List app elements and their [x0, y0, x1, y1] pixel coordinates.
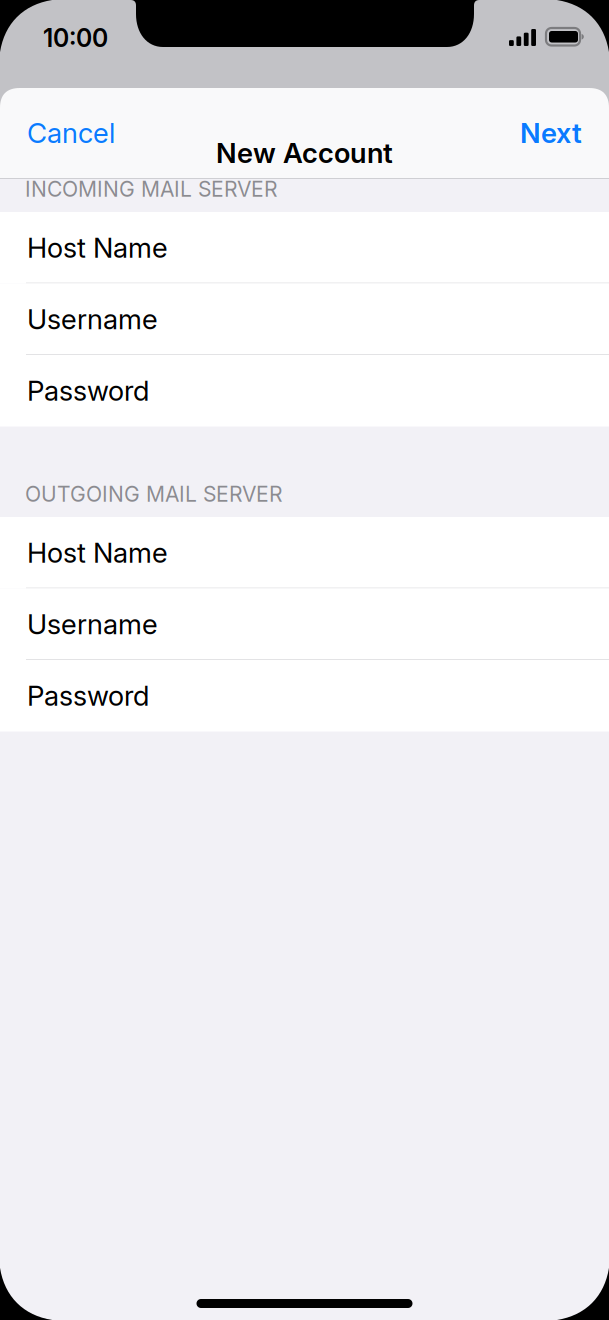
staticText: INCOMING MAIL SERVER: [25, 176, 278, 202]
staticText: Next: [520, 116, 582, 150]
staticText: 10:00: [43, 23, 108, 53]
button[interactable]: Password: [0, 660, 609, 731]
staticText: Username: [27, 607, 158, 641]
staticText: Cancel: [27, 116, 115, 150]
button[interactable]: Username: [0, 588, 609, 660]
staticText: New Account: [216, 136, 393, 170]
staticText: Host Name: [27, 231, 168, 264]
button[interactable]: Next: [449, 111, 609, 155]
button[interactable]: Cancel: [0, 111, 160, 155]
button[interactable]: Username: [0, 283, 609, 355]
staticText: Username: [27, 302, 158, 336]
staticText: Password: [27, 679, 149, 712]
button[interactable]: Password: [0, 355, 609, 426]
button[interactable]: Host Name: [0, 517, 609, 588]
staticText: Host Name: [27, 536, 168, 569]
staticText: Password: [27, 374, 149, 407]
button[interactable]: Host Name: [0, 212, 609, 283]
staticText: OUTGOING MAIL SERVER: [25, 481, 283, 507]
